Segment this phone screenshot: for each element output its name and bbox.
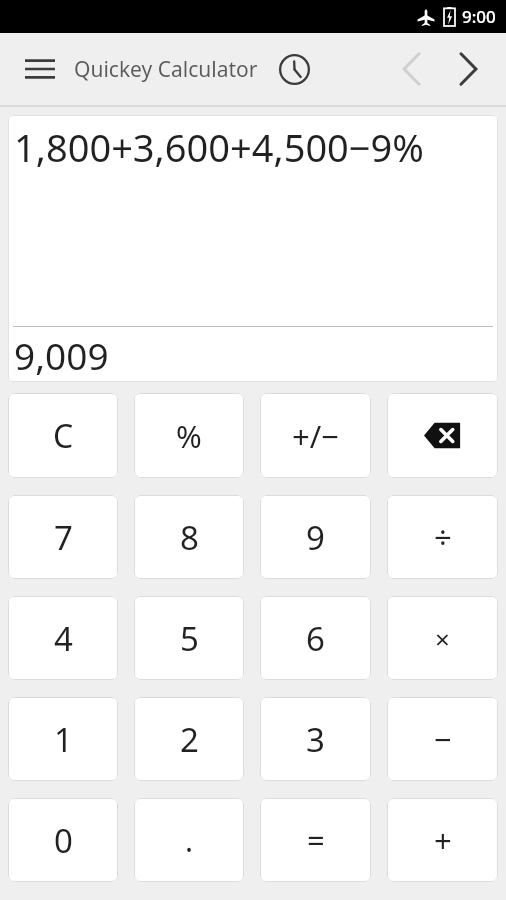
staticText: =	[307, 819, 325, 861]
button[interactable]: 0	[8, 798, 118, 882]
staticText: 4	[54, 616, 73, 661]
staticText: +	[434, 819, 452, 861]
button[interactable]: +/−	[260, 393, 371, 478]
button[interactable]: 1	[8, 697, 118, 781]
button[interactable]: 9	[260, 495, 371, 579]
button[interactable]: 8	[134, 495, 244, 579]
staticText: 9:00	[462, 5, 496, 28]
staticText: ×	[435, 621, 450, 656]
staticText: 6	[306, 616, 325, 661]
button[interactable]: −	[387, 697, 498, 781]
staticText: 1	[54, 717, 73, 762]
staticText: 1,800+3,600+4,500−9%	[14, 121, 424, 173]
button[interactable]: 4	[8, 596, 118, 680]
staticText: 3	[306, 717, 325, 762]
staticText: −	[434, 718, 452, 760]
button[interactable]: 6	[260, 596, 371, 680]
staticText: ÷	[434, 516, 452, 558]
staticText: 8	[180, 515, 199, 560]
staticText: +/−	[292, 415, 339, 457]
staticText: 9,009	[14, 330, 109, 380]
button[interactable]: Backspace	[387, 393, 498, 478]
button[interactable]: C	[8, 393, 118, 478]
staticText: Quickey Calculator	[74, 55, 258, 84]
button[interactable]: .	[134, 798, 244, 882]
staticText: %	[176, 415, 202, 457]
button[interactable]: ×	[387, 596, 498, 680]
button[interactable]: 5	[134, 596, 244, 680]
staticText: 9	[306, 515, 325, 560]
button[interactable]: =	[260, 798, 371, 882]
button[interactable]: 2	[134, 697, 244, 781]
button[interactable]: Next	[440, 41, 496, 97]
staticText: C	[53, 414, 74, 458]
button[interactable]: ÷	[387, 495, 498, 579]
staticText: 2	[180, 717, 199, 762]
button[interactable]: History	[270, 45, 318, 93]
button[interactable]: 3	[260, 697, 371, 781]
staticText: 5	[180, 616, 199, 661]
staticText: 0	[54, 818, 73, 863]
staticText: 7	[54, 515, 73, 560]
button[interactable]: Previous	[384, 41, 440, 97]
staticText: .	[185, 820, 194, 861]
button[interactable]: Open menu	[14, 43, 66, 95]
button[interactable]: +	[387, 798, 498, 882]
button[interactable]: 7	[8, 495, 118, 579]
button[interactable]: %	[134, 393, 244, 478]
